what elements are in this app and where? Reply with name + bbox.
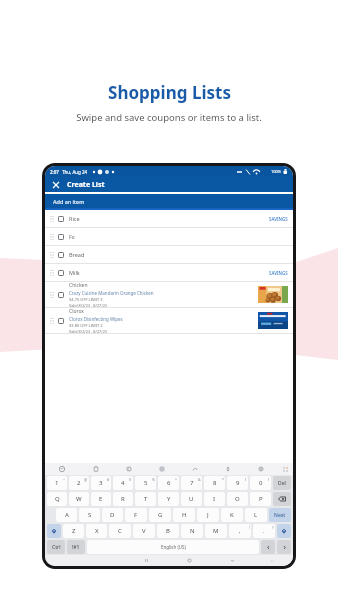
button[interactable]: 8 [204,476,225,490]
button[interactable]: S [79,508,100,522]
staticText: K [230,511,234,519]
button[interactable]: 4 [113,476,133,490]
button[interactable]: V [133,524,155,538]
button[interactable]: Clorox [45,308,293,333]
staticText: # [107,477,110,482]
button[interactable]: English (US) [87,540,259,554]
staticText: 3 [99,479,103,487]
staticText: ^ [175,477,178,482]
staticText: S [88,511,92,519]
staticText: G [158,511,163,519]
staticText: D [110,511,115,519]
button[interactable]: P [250,492,271,506]
staticText: H [182,511,187,519]
button[interactable]: Rice [45,210,293,227]
staticText: O [235,495,240,503]
staticText: C [118,527,122,535]
button[interactable]: Key [273,492,291,506]
button[interactable]: Hide keyboard [254,555,290,566]
staticText: V [142,527,146,535]
button[interactable]: C [109,524,131,538]
button[interactable]: K [221,508,243,522]
button[interactable]: F [125,508,147,522]
button[interactable]: H [173,508,195,522]
button[interactable]: L [245,508,267,522]
staticText: @ [84,477,88,482]
button[interactable]: Key [277,524,291,538]
button[interactable]: Milk [45,264,293,281]
staticText: !#1 [72,544,80,551]
button[interactable]: Key [47,524,61,538]
button[interactable]: Z [63,524,84,538]
staticText: Valid 8/2/23 - 8/27/23 [69,303,108,307]
button[interactable]: J [197,508,219,522]
button[interactable]: Keyboard tool 6 [211,463,244,475]
button[interactable]: Keyboard tool 1 [45,463,79,475]
button[interactable]: 2 [69,476,89,490]
button[interactable]: Keyboard tool 7 [244,463,277,475]
button[interactable]: 9 [227,476,248,490]
staticText: M [213,527,219,535]
button[interactable]: Recents [125,555,168,566]
staticText: 7 [190,479,194,487]
staticText: E [99,495,103,503]
button[interactable]: I [204,492,225,506]
button[interactable]: M [205,524,227,538]
staticText: . [263,527,265,535]
button[interactable]: SAVINGS [269,270,288,276]
button[interactable]: . [253,524,275,538]
button[interactable]: SAVINGS [269,216,288,222]
staticText: Thu, Aug 24 [62,169,88,175]
button[interactable]: 6 [158,476,179,490]
staticText: 6 [167,479,171,487]
staticText: Valid 8/2/23 - 8/27/23 [69,329,108,333]
button[interactable]: !#1 [67,540,85,554]
button[interactable]: 0 [250,476,271,490]
button[interactable]: N [181,524,203,538]
staticText: $ [129,477,132,482]
button[interactable]: Keyboard tool 2 [79,463,112,475]
button[interactable]: Add an item [45,194,293,208]
button[interactable]: W [69,492,89,506]
button[interactable]: Next [269,508,291,522]
staticText: Clorox [69,308,85,315]
button[interactable]: Chicken [45,282,293,307]
button[interactable]: E [91,492,111,506]
button[interactable]: More keyboard options [277,463,293,475]
button[interactable]: Fx [45,228,293,245]
staticText: 2:07 [50,169,59,175]
button[interactable]: Q [47,492,67,506]
button[interactable]: 5 [135,476,156,490]
button[interactable]: Home [168,555,211,566]
staticText: ( [245,477,247,482]
button[interactable]: Y [158,492,179,506]
button[interactable]: 1 [47,476,67,490]
button[interactable]: A [56,508,77,522]
button[interactable]: Key [277,540,291,554]
button[interactable]: G [149,508,171,522]
button[interactable]: Keyboard tool 4 [145,463,178,475]
staticText: Add an item [53,198,85,205]
button[interactable]: 3 [91,476,111,490]
staticText: Fx [69,233,75,240]
button[interactable]: Keyboard tool 5 [178,463,211,475]
staticText: B [166,527,170,535]
button[interactable]: B [157,524,179,538]
button[interactable]: Ctrl [47,540,65,554]
button[interactable]: R [113,492,133,506]
staticText: * [222,477,224,482]
button[interactable]: Bread [45,246,293,263]
button[interactable]: X [86,524,107,538]
button[interactable]: Key [261,540,275,554]
button[interactable]: D [102,508,123,522]
button[interactable]: T [135,492,156,506]
button[interactable]: U [181,492,202,506]
button[interactable]: Del [273,476,291,490]
button[interactable]: Back [211,555,254,566]
button[interactable]: , [229,524,251,538]
button[interactable]: 7 [181,476,202,490]
button[interactable]: O [227,492,248,506]
button[interactable]: Keyboard tool 3 [112,463,145,475]
button[interactable]: Close [50,179,61,190]
